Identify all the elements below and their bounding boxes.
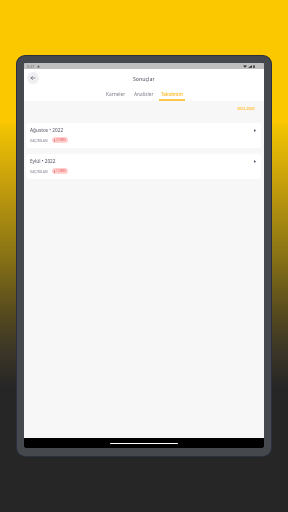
button[interactable]: Takvimim [158, 87, 186, 101]
staticText: KAÇIRILAN [30, 169, 48, 174]
button[interactable]: Analizler [130, 87, 158, 101]
staticText: KAÇIRILAN [30, 138, 48, 143]
button[interactable]: Ağustos • 2022 [26, 123, 261, 148]
button[interactable]: Karneler [102, 87, 130, 101]
staticText: 1 DERS [56, 169, 66, 173]
staticText: Eylül • 2022 [30, 158, 56, 164]
button[interactable]: Back [27, 72, 39, 84]
staticText: 5:27 [27, 64, 35, 69]
button[interactable]: Eylül • 2022 [26, 154, 261, 179]
staticText: Takvimim [161, 91, 183, 98]
staticText: Sonuçlar [133, 75, 155, 82]
staticText: Karneler [106, 91, 126, 98]
staticText: Ağustos • 2022 [30, 127, 64, 133]
staticText: Analizler [134, 91, 154, 98]
button[interactable]: 2022-2023 [237, 106, 255, 111]
staticText: 3 DERS [56, 138, 66, 142]
